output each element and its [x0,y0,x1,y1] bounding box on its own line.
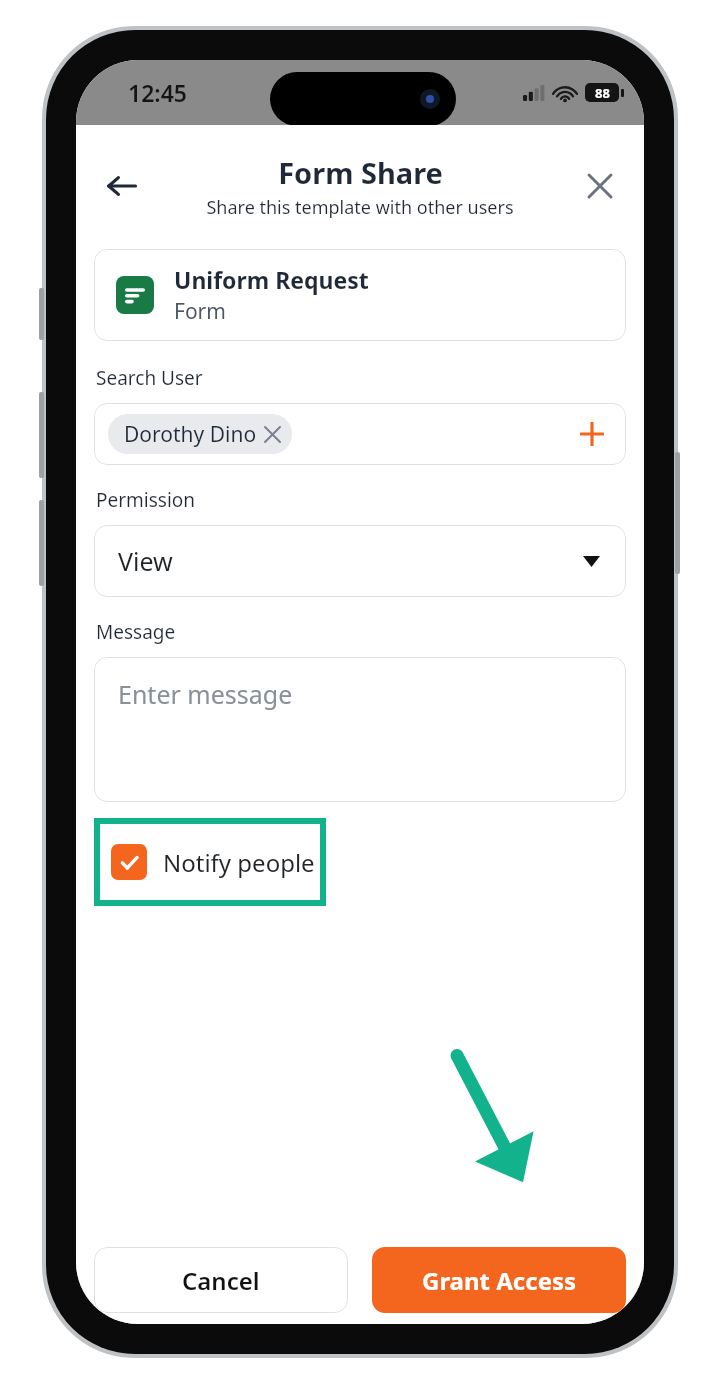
staticText: 88 [595,84,610,102]
staticText: Generate Inspection Checklist [136,1274,451,1304]
staticText: Grant Access [422,1264,577,1297]
button[interactable]: Uniform Request [94,249,626,341]
button[interactable]: Grant Access [372,1247,626,1313]
button[interactable]: Cancel [94,1247,348,1313]
staticText: Dorothy Dino [124,420,257,449]
staticText: Search User [96,365,203,391]
button[interactable]: View [94,525,626,597]
button[interactable]: Dorothy Dino [94,403,626,465]
staticText: Form [174,297,226,326]
staticText: Notify people [163,846,315,879]
staticText: Permission [96,487,196,513]
button[interactable]: Enter message [94,657,626,802]
staticText: Uniform Request [174,264,369,295]
staticText: View [118,544,173,578]
button[interactable]: Add user [572,414,612,454]
button[interactable]: Close [576,162,624,210]
staticText: Cancel [182,1264,260,1297]
button[interactable]: Dorothy Dino [108,414,292,454]
button[interactable]: Back [96,160,148,212]
staticText: Message [96,619,176,645]
staticText: 12:45 [128,77,187,108]
staticText: Share this template with other users [206,195,514,220]
staticText: Form Share [278,153,443,192]
button[interactable]: Notify people [94,818,326,906]
staticText: Enter message [118,677,293,711]
